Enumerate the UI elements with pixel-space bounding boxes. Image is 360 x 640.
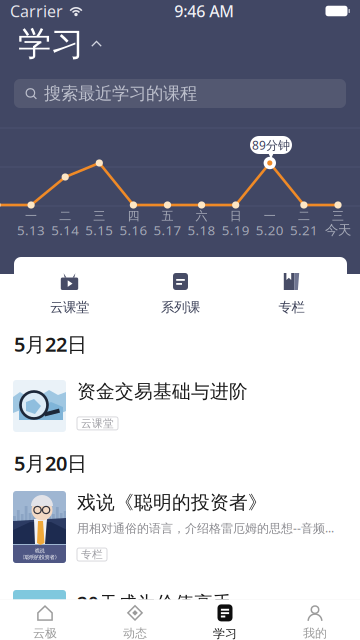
staticText: 5.19 [222,221,250,239]
staticText: 用相对通俗的语言，介绍格雷厄姆的思想--音频专栏 [77,520,336,536]
staticText: 5.14 [51,221,79,239]
staticText: 5.18 [188,221,216,239]
button[interactable]: 学习 [180,599,270,640]
staticText: 专栏 [278,299,304,315]
staticText: 动态 [123,626,147,640]
staticText: 一 [25,209,37,223]
button[interactable]: 戏说 [0,491,360,563]
staticText: 二 [298,209,310,223]
staticText: 云极 [33,626,57,640]
staticText: 20天成为价值高手 [77,590,232,615]
staticText: 四 [127,209,139,223]
button[interactable]: 我的 [270,599,360,640]
staticText: 5.17 [153,221,181,239]
staticText: 89分钟 [252,137,290,153]
staticText: 三 [93,209,105,223]
staticText: Carrier [10,0,63,22]
staticText: 5月20日 [14,450,87,476]
staticText: 5月22日 [14,331,87,357]
button[interactable]: 资金交易基础与进阶 [0,380,360,432]
staticText: 一 [264,209,276,223]
staticText: 我的 [303,626,327,640]
button[interactable]: 系列课 [125,257,236,323]
staticText: 资金交易基础与进阶 [77,380,248,403]
staticText: 云课堂 [50,299,89,315]
staticText: 学习 [18,23,84,64]
staticText: 三 [332,209,344,223]
staticText: 5.20 [256,221,284,239]
button[interactable]: 云极 [0,599,90,640]
staticText: 9:46 AM [174,0,234,22]
staticText: 二 [59,209,71,223]
staticText: 5.16 [119,221,147,239]
staticText: 学习 [213,626,237,640]
staticText: 云课堂 [81,417,114,430]
button[interactable]: 专栏 [236,257,347,323]
staticText: 《聪明的投资者》 [19,554,59,561]
staticText: 5.15 [85,221,113,239]
staticText: 今天 [325,222,351,238]
staticText: 搜索最近学习的课程 [44,83,197,104]
staticText: 系列课 [161,299,200,315]
staticText: 戏说《聪明的投资者》 [77,491,267,514]
staticText: 戏说 [34,547,44,554]
staticText: 5.21 [290,221,318,239]
button[interactable]: 动态 [90,599,180,640]
staticText: 5.13 [17,221,45,239]
staticText: 六 [196,209,208,223]
button[interactable]: 搜索最近学习的课程 [14,79,346,108]
button[interactable]: 云课堂 [14,257,125,323]
staticText: 专栏 [81,548,103,561]
staticText: 日 [230,209,242,223]
staticText: 五 [161,209,173,223]
